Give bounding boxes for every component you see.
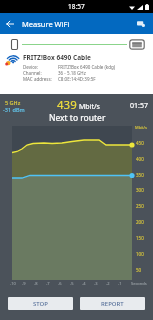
staticText: FRITZ!Box 6490 Cable (kdg): [58, 64, 116, 70]
staticText: Mbit/s: [79, 102, 100, 112]
staticText: 400: [136, 156, 144, 162]
staticText: -2: [106, 281, 110, 286]
staticText: 350: [136, 172, 144, 178]
staticText: 36 - 5.18 GHz: [58, 70, 86, 76]
button[interactable]: REPORT: [80, 297, 145, 310]
staticText: 450: [136, 140, 144, 146]
staticText: 150: [136, 235, 144, 241]
staticText: Measure WiFi: [22, 19, 70, 29]
staticText: FRITZ!Box 6490 Cable: [23, 53, 91, 62]
staticText: -5: [70, 281, 74, 286]
staticText: REPORT: [101, 300, 124, 308]
staticText: Channel:: [23, 70, 42, 76]
staticText: 200: [136, 219, 144, 225]
staticText: STOP: [33, 300, 48, 308]
staticText: -9: [22, 281, 26, 286]
staticText: 50: [136, 267, 142, 273]
staticText: Next to router: [49, 112, 106, 124]
staticText: MAC address:: [23, 76, 52, 82]
staticText: C8:0E:14:4D:39:5F: [58, 76, 96, 82]
staticText: Mbit/s: [135, 125, 147, 130]
staticText: 250: [136, 203, 144, 209]
staticText: Seconds: [131, 281, 147, 286]
staticText: -3: [94, 281, 98, 286]
button[interactable]: Save report: [133, 13, 149, 34]
staticText: -10: [10, 281, 16, 286]
staticText: 18:57: [68, 2, 85, 11]
staticText: -6: [58, 281, 62, 286]
staticText: 300: [136, 187, 144, 193]
staticText: 01:57: [130, 101, 148, 111]
staticText: 5 GHz: [5, 99, 21, 106]
button[interactable]: STOP: [8, 297, 73, 310]
staticText: -4: [82, 281, 86, 286]
staticText: -7: [46, 281, 50, 286]
staticText: 100: [136, 251, 144, 257]
staticText: -1: [118, 281, 122, 286]
staticText: -31 dBm: [3, 106, 25, 113]
staticText: -8: [34, 281, 38, 286]
staticText: 439: [57, 97, 77, 113]
button[interactable]: Back: [0, 13, 20, 34]
staticText: Device:: [23, 64, 39, 70]
